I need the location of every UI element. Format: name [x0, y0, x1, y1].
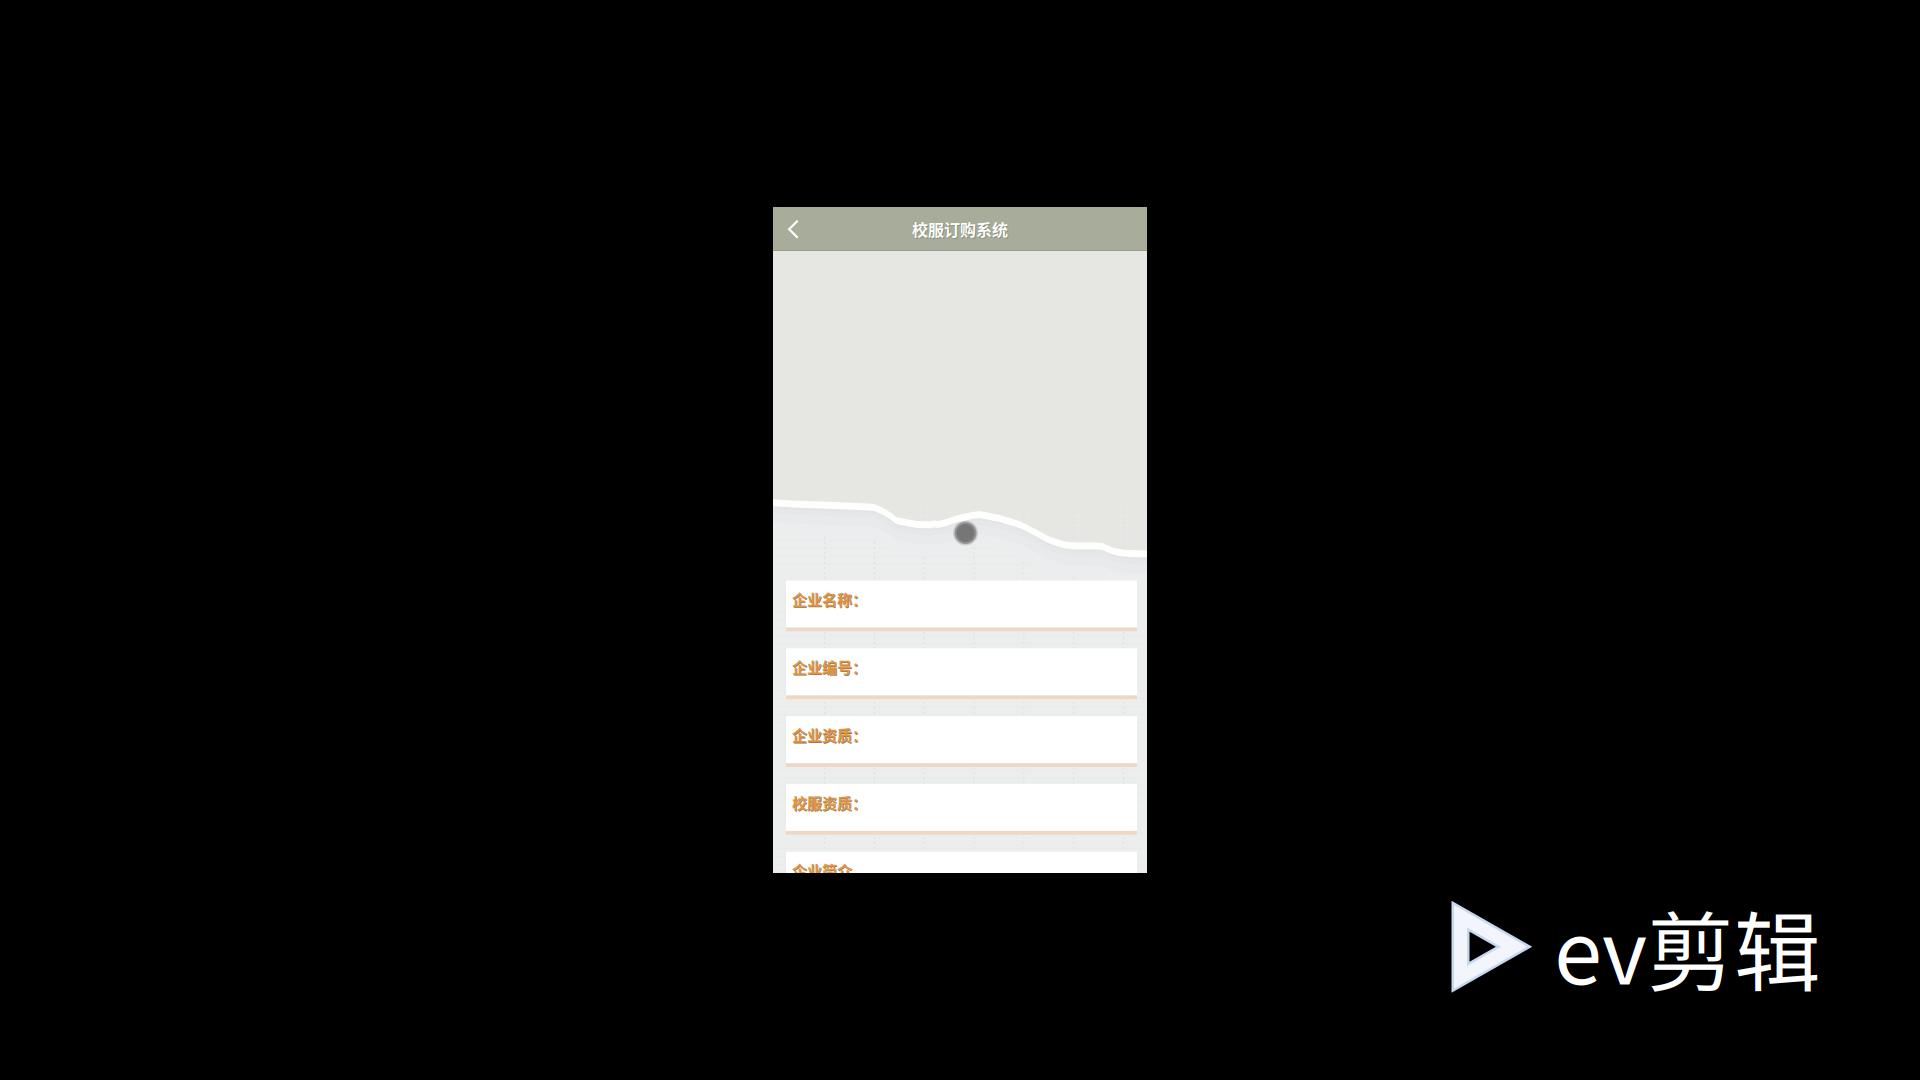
staticText: 企业简介	[792, 859, 852, 881]
button[interactable]: 校服资质：	[786, 784, 1137, 835]
staticText: 校服订购系统	[912, 217, 1008, 241]
button[interactable]: 返回	[773, 207, 818, 251]
button[interactable]: 企业简介	[786, 852, 1137, 903]
staticText: 校服资质：	[792, 791, 867, 813]
staticText: 校服订购系统	[913, 218, 1009, 241]
staticText: 企业编号：	[792, 656, 867, 678]
staticText: ev剪辑	[1554, 884, 1821, 1009]
staticText: 企业简介	[793, 860, 853, 882]
staticText: 企业名称：	[792, 588, 867, 610]
staticText: 校服资质：	[793, 792, 868, 814]
button[interactable]: 企业资质：	[786, 716, 1137, 767]
staticText: 企业资质：	[793, 724, 868, 746]
button[interactable]: 企业名称：	[786, 580, 1137, 631]
staticText: 企业编号：	[793, 657, 868, 678]
button[interactable]: 企业编号：	[786, 648, 1137, 699]
staticText: 企业名称：	[793, 589, 868, 611]
staticText: 企业资质：	[792, 724, 867, 745]
